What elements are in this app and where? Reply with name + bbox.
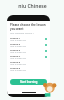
staticText: Lesson 3 [10,48,21,51]
staticText: Lesson 6 [10,66,21,69]
staticText: Nice to meet you [10,57,26,60]
staticText: Nice to meet you [10,69,26,72]
staticText: niu Chinese [18,3,47,10]
staticText: you want [10,27,24,31]
staticText: Lesson 1 [10,36,21,39]
button[interactable]: Lesson 3 [10,48,47,54]
button[interactable]: Lesson 6 [10,66,47,72]
staticText: HSK Standard Course 1 [10,32,34,35]
staticText: Nice to meet you [10,39,26,42]
staticText: Nice to meet you [10,45,26,48]
staticText: Start learning [20,80,38,84]
button[interactable]: Lesson 4 [10,54,47,60]
button[interactable]: Lesson 5 [10,60,47,66]
staticText: Lesson 2 [10,42,21,45]
staticText: Nice to meet you [10,63,26,66]
staticText: Lesson 5 [10,60,21,63]
staticText: Nice to meet you [10,51,26,54]
staticText: Lesson 4 [10,54,21,57]
button[interactable]: Start learning [10,79,47,85]
staticText: Please choose the lesson [10,23,46,27]
button[interactable]: Lesson 2 [10,42,47,48]
button[interactable]: Lesson 1 [10,36,47,42]
